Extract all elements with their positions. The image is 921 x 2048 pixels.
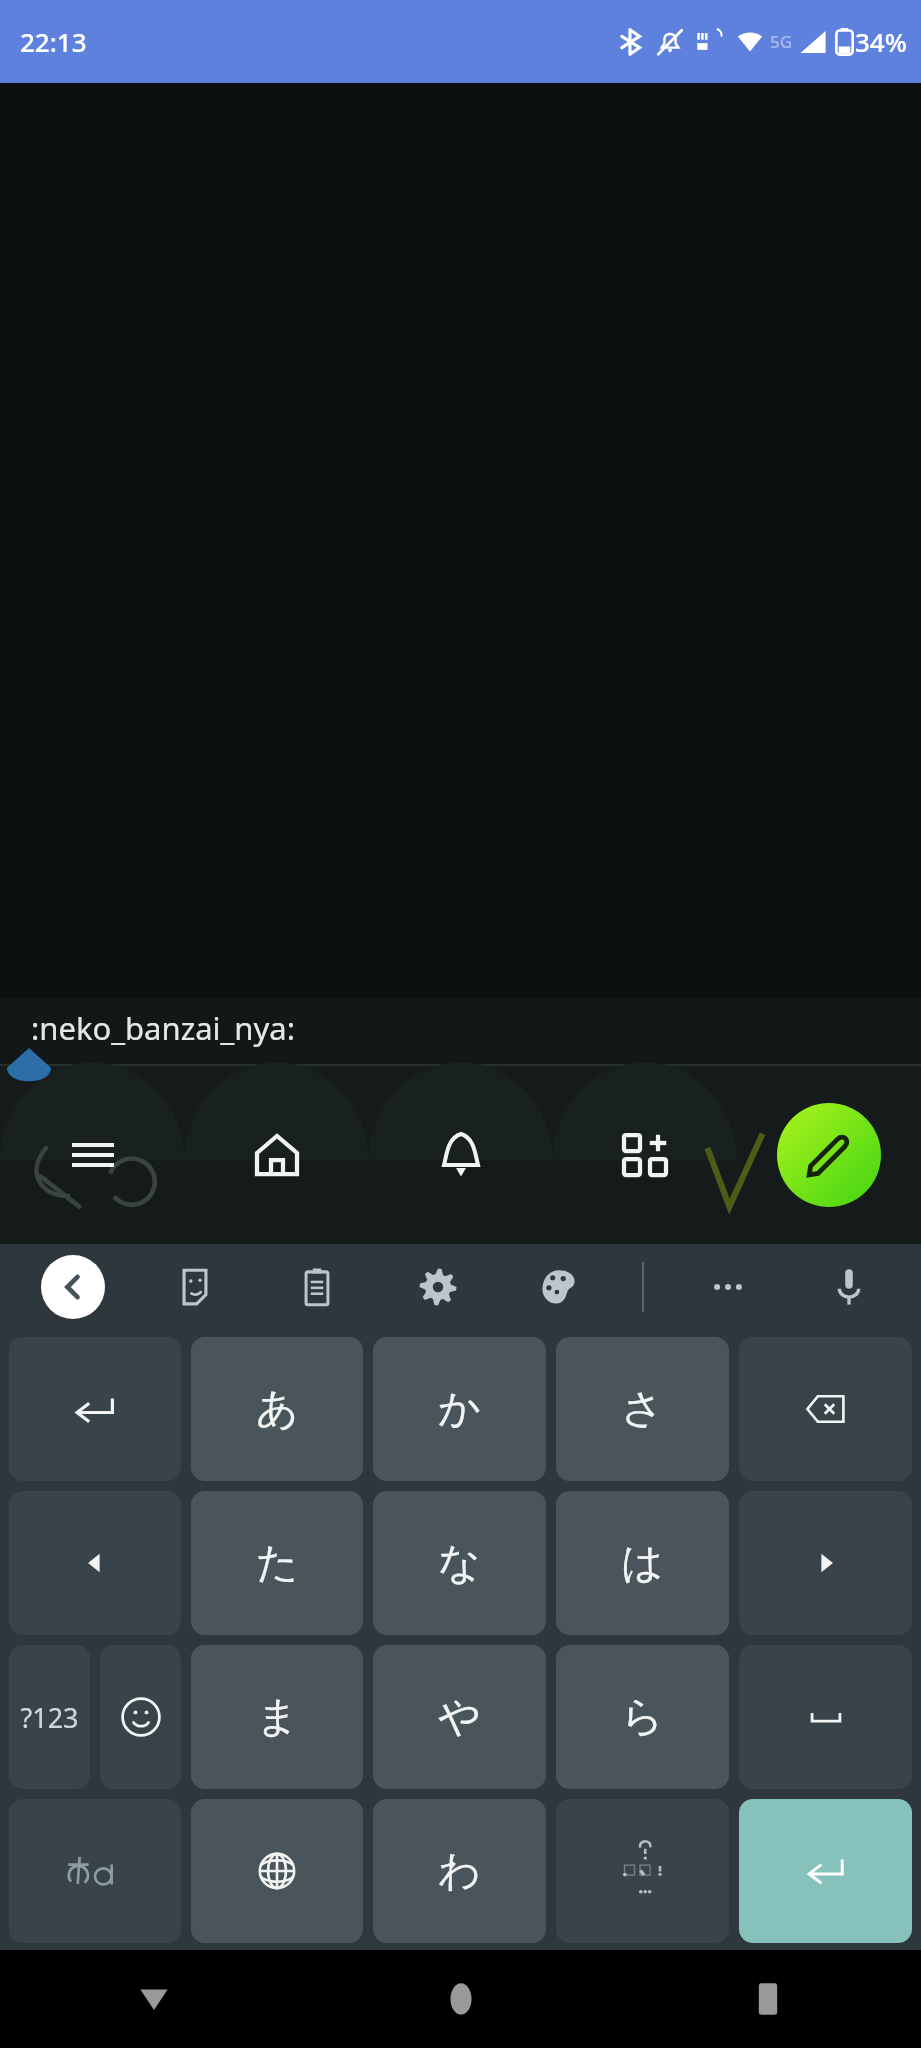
staticText: た: [256, 1537, 299, 1590]
button[interactable]: Enter: [739, 1799, 912, 1943]
button[interactable]: Switch input mode: [9, 1799, 181, 1943]
button[interactable]: Space: [739, 1645, 912, 1789]
staticText: わ: [438, 1845, 481, 1898]
button[interactable]: ?123: [9, 1645, 90, 1789]
button[interactable]: は: [556, 1491, 729, 1635]
button[interactable]: Change language: [191, 1799, 363, 1943]
staticText: :neko_banzai_nya:: [31, 1007, 296, 1049]
button[interactable]: Home: [307, 1950, 614, 2048]
button[interactable]: Move cursor left: [9, 1491, 181, 1635]
staticText: は: [621, 1537, 664, 1590]
button[interactable]: ら: [556, 1645, 729, 1789]
button[interactable]: More options: [667, 1244, 788, 1330]
button[interactable]: さ: [556, 1337, 729, 1481]
staticText: 22:13: [20, 24, 87, 59]
staticText: や: [438, 1691, 481, 1744]
button[interactable]: Emoji: [100, 1645, 181, 1789]
button[interactable]: Backspace: [739, 1337, 912, 1481]
button[interactable]: Move cursor right: [739, 1491, 912, 1635]
staticText: な: [438, 1537, 481, 1590]
button[interactable]: あ: [191, 1337, 363, 1481]
button[interactable]: か: [373, 1337, 546, 1481]
staticText: さ: [621, 1383, 664, 1436]
staticText: か: [438, 1383, 481, 1436]
button[interactable]: た: [191, 1491, 363, 1635]
button[interactable]: Notifications: [369, 1066, 553, 1244]
button[interactable]: Menu: [0, 1066, 185, 1244]
button[interactable]: ま: [191, 1645, 363, 1789]
staticText: あ: [256, 1383, 299, 1436]
staticText: ?123: [20, 1699, 79, 1736]
button[interactable]: Compose new post: [777, 1103, 881, 1207]
staticText: 34%: [855, 24, 907, 59]
staticText: 5G: [770, 30, 793, 53]
button[interactable]: Undo: [9, 1337, 181, 1481]
button[interactable]: Settings: [377, 1244, 498, 1330]
button[interactable]: Home: [185, 1066, 369, 1244]
button[interactable]: Theme: [498, 1244, 619, 1330]
button[interactable]: Apps: [553, 1066, 737, 1244]
staticText: ら: [621, 1691, 664, 1744]
button[interactable]: わ: [373, 1799, 546, 1943]
button[interactable]: な: [373, 1491, 546, 1635]
button[interactable]: Recent apps: [614, 1950, 921, 2048]
button[interactable]: Clipboard: [256, 1244, 377, 1330]
staticText: ま: [256, 1691, 299, 1744]
button[interactable]: Punctuation: [556, 1799, 729, 1943]
button[interactable]: Hide keyboard: [0, 1950, 307, 2048]
button[interactable]: Voice input: [788, 1244, 909, 1330]
button[interactable]: Back: [12, 1244, 134, 1330]
button[interactable]: Stickers: [134, 1244, 256, 1330]
button[interactable]: や: [373, 1645, 546, 1789]
